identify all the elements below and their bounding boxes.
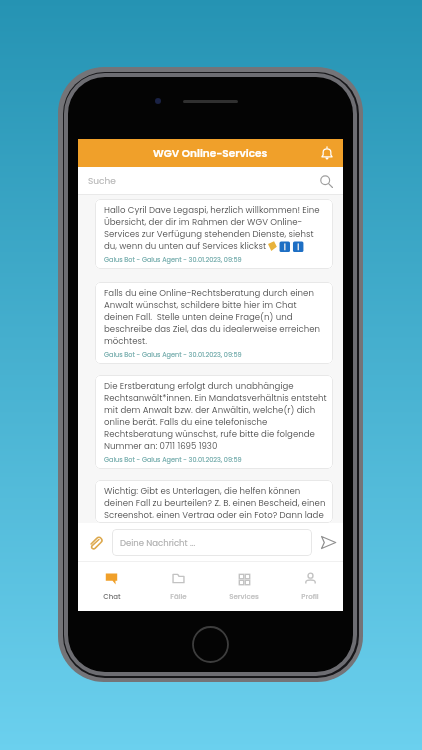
button[interactable]: Profil [277, 562, 343, 611]
staticText: Die Erstberatung erfolgt durch unabhängi… [104, 380, 328, 452]
button[interactable]: Chat [78, 562, 145, 611]
staticText: WGV Online-Services [153, 146, 268, 161]
button[interactable]: Deine Nachricht ... [112, 529, 312, 556]
button[interactable]: Fälle [145, 562, 211, 611]
staticText: Gaius Bot - Gaius Agent - 30.01.2023, 09… [104, 350, 242, 359]
button[interactable]: Wichtig: Gibt es Unterlagen, die helfen … [95, 480, 333, 523]
button[interactable]: Die Erstberatung erfolgt durch unabhängi… [95, 375, 333, 469]
button[interactable]: Senden [321, 535, 336, 550]
staticText: Services [229, 592, 259, 602]
staticText: Suche [88, 175, 116, 188]
button[interactable]: Hallo Cyril Dave Legaspi, herzlich willk… [95, 199, 333, 269]
staticText: Chat [103, 592, 121, 602]
staticText: Profil [301, 592, 319, 602]
staticText: Gaius Bot - Gaius Agent - 30.01.2023, 09… [104, 455, 242, 464]
button[interactable]: Services [211, 562, 277, 611]
staticText: Hallo Cyril Dave Legaspi, herzlich willk… [104, 204, 328, 252]
staticText: Fälle [170, 592, 187, 602]
button[interactable]: Suche [78, 167, 343, 195]
button[interactable]: Falls du eine Online-Rechtsberatung durc… [95, 282, 333, 364]
button[interactable]: Benachrichtigungen [319, 145, 335, 161]
staticText: Wichtig: Gibt es Unterlagen, die helfen … [104, 485, 328, 518]
staticText: Deine Nachricht ... [120, 537, 196, 549]
button[interactable]: Anhang [88, 535, 102, 549]
staticText: Gaius Bot - Gaius Agent - 30.01.2023, 09… [104, 255, 242, 264]
staticText: Falls du eine Online-Rechtsberatung durc… [104, 287, 328, 347]
